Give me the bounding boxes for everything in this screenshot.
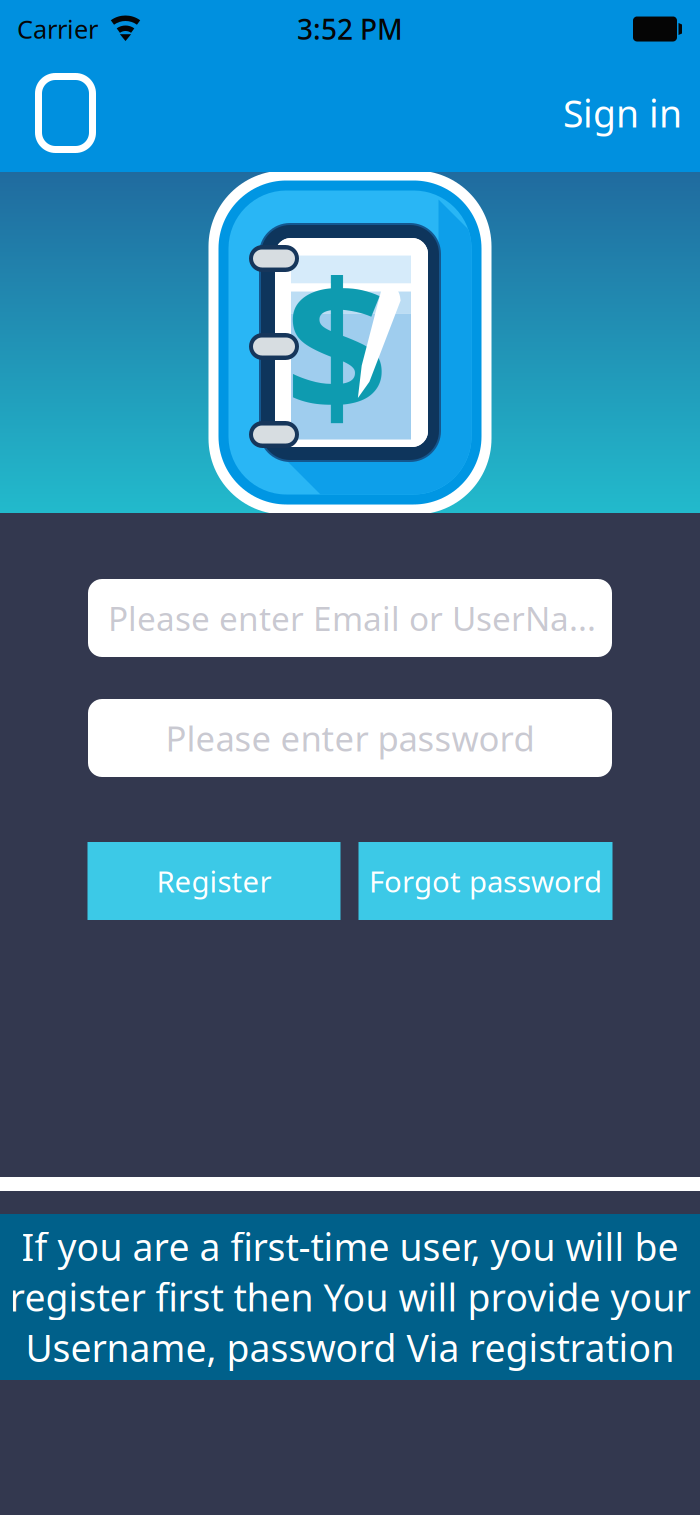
staticText: Forgot password [369,861,602,900]
staticText: register first then You will provide you… [9,1272,690,1322]
button[interactable]: Forgot password [358,842,612,920]
staticText: If you are a first-time user, you will b… [21,1222,678,1271]
staticText: Username, password Via registration [25,1323,674,1372]
staticText: Please enter Email or UserNa... [108,596,596,640]
staticText: Register [156,861,271,900]
staticText: $ [285,222,389,463]
staticText: Please enter password [165,715,534,761]
staticText: 3:52 PM [297,10,403,48]
staticText: Carrier [17,12,98,46]
staticText: Sign in [563,88,682,138]
button[interactable]: Register [87,842,340,920]
button[interactable]: Sign in [563,88,682,138]
button[interactable]: Back [35,73,96,153]
